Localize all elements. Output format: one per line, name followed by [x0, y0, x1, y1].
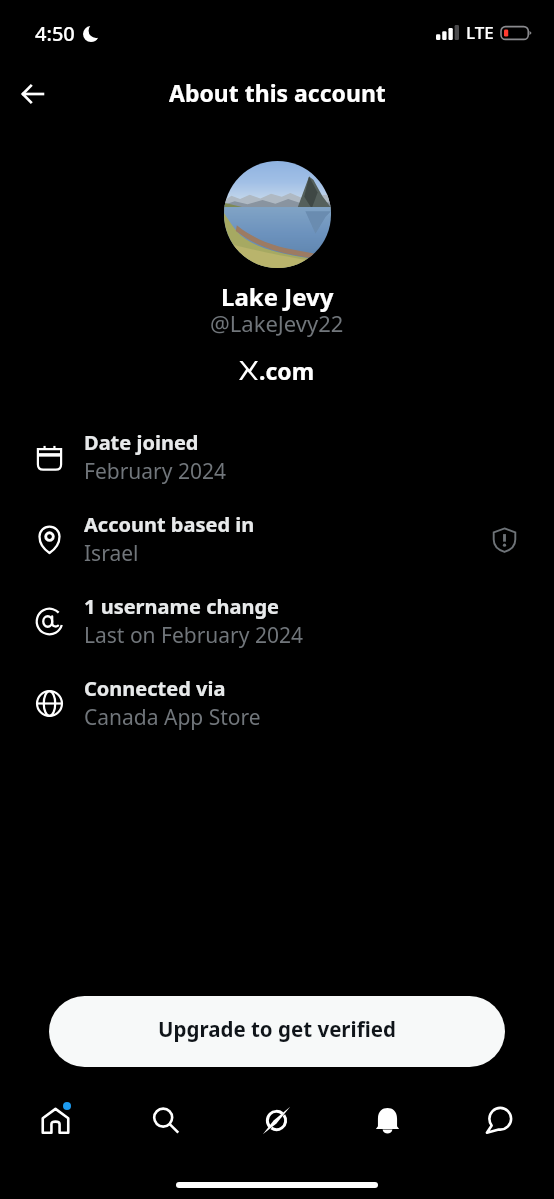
staticText: LTE: [466, 21, 494, 44]
button[interactable]: Home: [0, 1092, 110, 1148]
staticText: Date joined: [84, 429, 199, 456]
staticText: 1 username change: [84, 593, 280, 620]
staticText: Canada App Store: [84, 703, 261, 732]
button[interactable]: Date joined: [0, 416, 554, 498]
staticText: 4:50: [35, 20, 75, 47]
button[interactable]: Back: [7, 68, 59, 120]
staticText: Last on February 2024: [84, 621, 304, 650]
staticText: February 2024: [84, 457, 226, 486]
button[interactable]: Connected via: [0, 662, 554, 744]
button[interactable]: Messages: [443, 1092, 554, 1148]
staticText: @LakeJevy22: [210, 308, 344, 338]
button[interactable]: Profile photo: [224, 161, 331, 268]
button[interactable]: Search: [110, 1092, 221, 1148]
button[interactable]: Grok: [221, 1092, 332, 1148]
staticText: Upgrade to get verified: [158, 1015, 396, 1043]
button[interactable]: Learn more: [487, 522, 521, 556]
staticText: Lake Jevy: [221, 280, 334, 313]
button[interactable]: Account based in: [0, 498, 554, 580]
staticText: Connected via: [84, 675, 226, 702]
staticText: About this account: [169, 77, 386, 108]
staticText: Account based in: [84, 511, 255, 538]
button[interactable]: 1 username change: [0, 580, 554, 662]
button[interactable]: Notifications: [332, 1092, 443, 1148]
staticText: .com: [259, 355, 315, 386]
staticText: Israel: [84, 539, 139, 568]
button[interactable]: Upgrade to get verified: [49, 996, 505, 1067]
